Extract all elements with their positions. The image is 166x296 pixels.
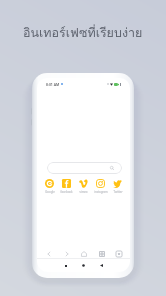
staticText: 8:01 AM: [46, 82, 60, 87]
staticText: อินเทอร์เฟซที่เรียบง่าย: [23, 23, 143, 43]
staticText: vimeo: [79, 190, 88, 194]
button[interactable]: Recents: [96, 260, 107, 271]
button[interactable]: Tabs: [95, 247, 108, 260]
button[interactable]: Home: [78, 260, 89, 271]
button[interactable]: Google: [42, 179, 57, 194]
button[interactable]: Twitter: [110, 179, 125, 194]
button[interactable]: vimeo: [76, 179, 91, 194]
button[interactable]: Back: [42, 247, 55, 260]
button[interactable]: Forward: [60, 247, 73, 260]
button[interactable]: Home: [77, 247, 90, 260]
staticText: instagram: [94, 190, 108, 194]
button[interactable]: Menu: [112, 247, 125, 260]
button[interactable]: Search: [47, 162, 122, 174]
button[interactable]: Back: [60, 260, 71, 271]
staticText: facebook: [60, 190, 73, 194]
button[interactable]: facebook: [59, 179, 74, 194]
staticText: Twitter: [113, 190, 123, 194]
staticText: Google: [45, 190, 55, 194]
button[interactable]: instagram: [93, 179, 108, 194]
